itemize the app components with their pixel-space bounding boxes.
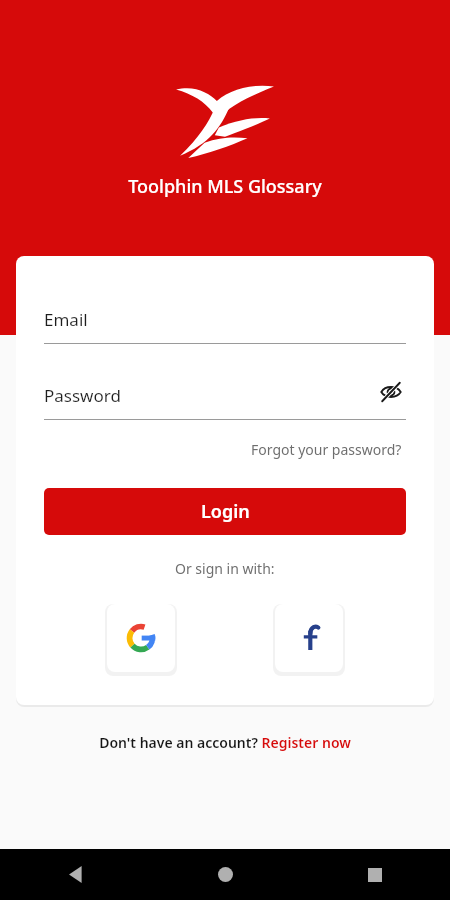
staticText: Email: [44, 308, 88, 331]
staticText: Login: [201, 499, 250, 524]
button[interactable]: Login: [44, 488, 406, 535]
button[interactable]: Show password: [376, 377, 406, 407]
button[interactable]: Recent apps: [300, 849, 450, 900]
button[interactable]: Sign in with Facebook: [275, 604, 343, 672]
staticText: Password: [44, 384, 121, 407]
button[interactable]: Forgot your password?: [247, 436, 406, 463]
button[interactable]: Email: [44, 300, 406, 344]
button[interactable]: Password: [44, 376, 406, 420]
staticText: Forgot your password?: [251, 440, 402, 459]
staticText: Toolphin MLS Glossary: [128, 174, 322, 199]
staticText: Or sign in with:: [175, 559, 275, 578]
button[interactable]: Home: [150, 849, 300, 900]
button[interactable]: Sign in with Google: [107, 604, 175, 672]
staticText: Don't have an account? Register now: [99, 733, 351, 752]
button[interactable]: Don't have an account? Register now: [91, 729, 359, 756]
button[interactable]: Back: [0, 849, 150, 900]
